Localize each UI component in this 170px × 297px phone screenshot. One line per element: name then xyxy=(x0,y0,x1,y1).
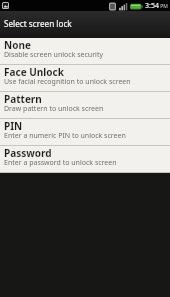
staticText: Enter a password to unlock screen xyxy=(4,158,117,168)
button[interactable]: PIN xyxy=(0,119,170,146)
staticText: Enter a numeric PIN to unlock screen xyxy=(4,131,126,141)
staticText: PM xyxy=(159,3,168,10)
staticText: Draw pattern to unlock screen xyxy=(4,104,104,114)
staticText: 3:54 xyxy=(145,1,159,11)
staticText: Password xyxy=(4,146,52,160)
staticText: Pattern xyxy=(4,92,42,106)
staticText: Use facial recognition to unlock screen xyxy=(4,77,131,87)
staticText: PIN xyxy=(4,119,23,133)
button[interactable]: Password xyxy=(0,146,170,173)
staticText: Disable screen unlock security xyxy=(4,50,103,60)
button[interactable]: Face Unlock xyxy=(0,65,170,92)
button[interactable]: None xyxy=(0,38,170,65)
staticText: None xyxy=(4,38,31,52)
button[interactable]: Pattern xyxy=(0,92,170,119)
staticText: Face Unlock xyxy=(4,65,64,79)
staticText: Select screen lock xyxy=(4,18,72,29)
